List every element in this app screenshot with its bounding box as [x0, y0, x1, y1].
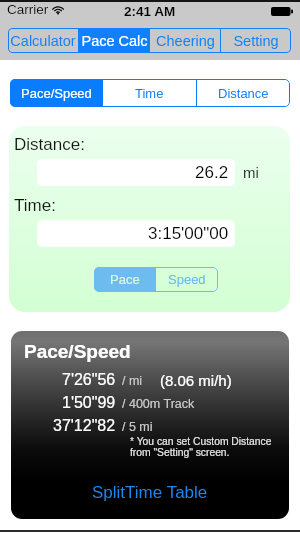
button[interactable]: Setting	[221, 28, 291, 53]
staticText: Cheering	[156, 33, 215, 49]
staticText: from "Setting" screen.	[130, 447, 230, 459]
other: Wi-Fi	[52, 5, 64, 15]
staticText: SplitTime Table	[92, 483, 208, 502]
staticText: Pace	[110, 272, 140, 287]
staticText: Calculator	[10, 33, 76, 49]
button[interactable]: Pace	[94, 267, 156, 292]
staticText: Setting	[233, 33, 279, 49]
staticText: Speed	[168, 272, 206, 287]
staticText: Distance	[218, 86, 269, 101]
button[interactable]: SplitTime Table	[11, 480, 289, 504]
staticText: 1'50"99	[62, 394, 116, 412]
button[interactable]: Pace Calc	[79, 28, 149, 53]
staticText: / 5 mi	[122, 420, 153, 434]
staticText: * You can set Custom Distance	[130, 436, 272, 448]
staticText: 7'26"56	[62, 371, 116, 389]
button[interactable]: Distance	[197, 79, 290, 107]
staticText: Carrier	[7, 2, 49, 17]
button[interactable]: 26.2	[37, 159, 235, 186]
button[interactable]: Calculator	[8, 28, 78, 53]
staticText: 3:15'00"00	[148, 224, 229, 243]
staticText: / 400m Track	[122, 397, 195, 411]
staticText: mi	[243, 164, 259, 181]
button[interactable]: 3:15'00"00	[37, 220, 235, 247]
staticText: 26.2	[195, 163, 229, 182]
button[interactable]: Cheering	[150, 28, 220, 53]
button[interactable]: Pace/Speed	[10, 79, 102, 107]
staticText: Pace/Speed	[24, 341, 131, 362]
staticText: Pace/Speed	[21, 86, 92, 101]
button[interactable]: Speed	[156, 267, 218, 292]
button[interactable]: Time	[103, 79, 196, 107]
staticText: Time	[135, 86, 164, 101]
staticText: / mi	[122, 374, 143, 388]
staticText: Time:	[14, 196, 56, 215]
staticText: 37'12"82	[53, 417, 116, 435]
staticText: Pace Calc	[81, 33, 148, 49]
staticText: 2:41 AM	[124, 4, 176, 19]
other: Battery	[271, 6, 293, 17]
staticText: (8.06 mi/h)	[160, 372, 232, 389]
staticText: Distance:	[14, 135, 85, 154]
